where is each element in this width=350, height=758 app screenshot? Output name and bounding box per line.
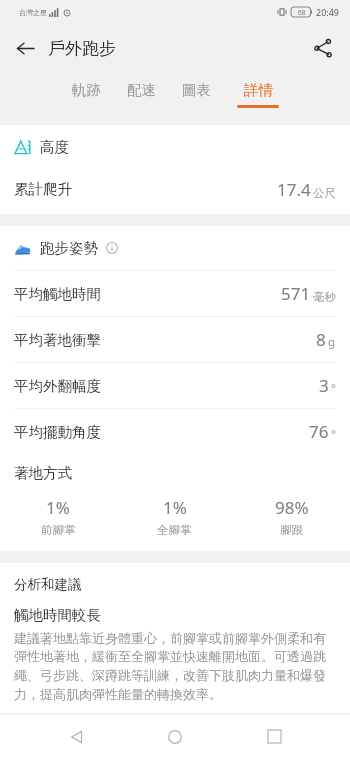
button[interactable]: 圖表 [182, 72, 211, 105]
staticText: 3 [319, 374, 329, 397]
button[interactable]: 平均外翻幅度 [0, 362, 350, 408]
button[interactable]: 軌跡 [72, 72, 101, 105]
staticText: 1% [163, 496, 187, 519]
staticText: 76 [309, 420, 329, 443]
staticText: g [328, 334, 336, 350]
button[interactable]: 平均擺動角度 [0, 408, 350, 454]
button[interactable]: Back [55, 715, 99, 758]
staticText: 公尺 [313, 186, 336, 200]
staticText: 平均外翻幅度 [14, 377, 101, 395]
staticText: 571 [281, 282, 311, 305]
staticText: ° [331, 426, 336, 442]
button[interactable]: 平均著地衝擊 [0, 316, 350, 362]
staticText: 17.4 [277, 178, 311, 201]
staticText: 圖表 [182, 81, 211, 99]
staticText: 平均著地衝擊 [14, 331, 101, 349]
staticText: 配速 [127, 81, 156, 99]
staticText: 68 [298, 8, 306, 17]
staticText: 98% [275, 496, 309, 519]
staticText: 平均觸地時間 [14, 285, 101, 303]
staticText: 跑步姿勢 [40, 239, 98, 257]
staticText: 毫秒 [313, 290, 336, 304]
button[interactable]: 詳情 [237, 72, 279, 108]
button[interactable]: Home [153, 715, 197, 758]
button[interactable]: Share [306, 31, 340, 65]
staticText: 軌跡 [72, 81, 101, 99]
staticText: 建議著地點靠近身體重心，前腳掌或前腳掌外側柔和有彈性地著地，緩衝至全腳掌並快速離… [14, 630, 336, 703]
button[interactable]: Back [8, 31, 42, 65]
button[interactable]: 平均觸地時間 [0, 270, 350, 316]
button[interactable]: Information [103, 239, 121, 257]
staticText: 著地方式 [14, 464, 72, 482]
staticText: 戶外跑步 [48, 38, 116, 59]
staticText: 平均擺動角度 [14, 423, 101, 441]
staticText: 全腳掌 [157, 523, 192, 537]
staticText: 1% [46, 496, 70, 519]
staticText: 腳跟 [280, 523, 303, 537]
staticText: 觸地時間較長 [14, 606, 101, 624]
staticText: 20:49 [316, 6, 340, 18]
staticText: 高度 [40, 138, 69, 156]
button[interactable]: 配速 [127, 72, 156, 105]
button[interactable]: Recent apps [252, 715, 296, 758]
staticText: 分析和建議 [14, 576, 82, 593]
staticText: 前腳掌 [41, 523, 76, 537]
staticText: 8 [316, 328, 326, 351]
staticText: 累計爬升 [14, 180, 72, 198]
staticText: 詳情 [244, 81, 273, 99]
staticText: 台灣之星 [19, 8, 47, 17]
staticText: ° [331, 380, 336, 396]
